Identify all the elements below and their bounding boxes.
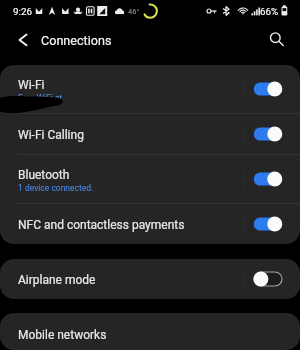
button[interactable]: Mobile networks — [0, 313, 300, 350]
button[interactable]: Bluetooth — [244, 155, 300, 203]
button[interactable]: Bluetooth — [0, 155, 300, 203]
button[interactable]: Wi-Fi — [0, 65, 300, 113]
staticText: 46° — [128, 7, 140, 16]
staticText: Airplane mode — [18, 273, 96, 287]
staticText: Bluetooth — [18, 168, 70, 182]
button[interactable]: Wi-Fi Calling — [244, 114, 300, 154]
button[interactable]: Wi-Fi Calling — [0, 114, 300, 154]
staticText: 66% — [260, 6, 279, 17]
button[interactable]: Wi-Fi — [244, 65, 300, 113]
button[interactable]: Search — [262, 25, 292, 55]
staticText: Wi-Fi Calling — [18, 128, 84, 142]
staticText: 1 device connected. — [18, 183, 94, 193]
button[interactable]: Airplane mode — [244, 259, 300, 299]
button[interactable]: NFC and contactless payments — [244, 204, 300, 244]
button[interactable]: Airplane mode — [0, 259, 300, 299]
button[interactable]: Back — [6, 25, 36, 55]
staticText: NFC and contactless payments — [18, 218, 185, 232]
staticText: Mobile networks — [18, 328, 107, 342]
staticText: Free WiFi at — [18, 93, 63, 103]
button[interactable]: NFC and contactless payments — [0, 204, 300, 244]
staticText: Connections — [41, 33, 112, 48]
staticText: 9:26 — [13, 6, 32, 17]
staticText: Wi-Fi — [18, 78, 45, 92]
